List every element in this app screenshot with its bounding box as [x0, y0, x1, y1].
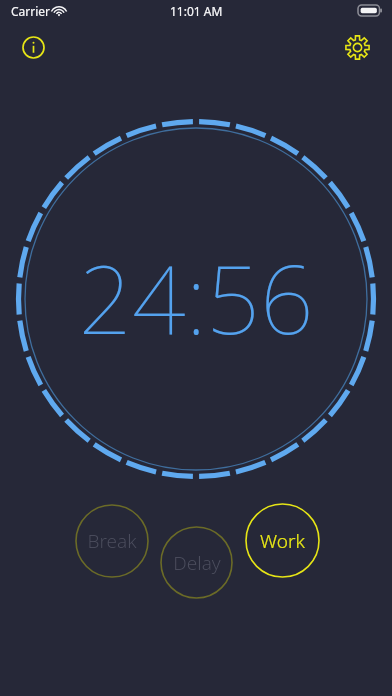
staticText: Delay [173, 550, 221, 576]
button[interactable]: Info [11, 25, 55, 69]
button[interactable]: Break [75, 504, 149, 578]
staticText: Break [87, 528, 137, 554]
button[interactable]: Work [245, 503, 320, 578]
staticText: Carrier [11, 3, 51, 19]
staticText: 11:01 AM [170, 3, 223, 19]
button[interactable]: Settings [335, 25, 379, 69]
button[interactable]: Delay [160, 526, 233, 599]
staticText: Work [260, 528, 305, 554]
staticText: 24:56 [78, 234, 314, 362]
